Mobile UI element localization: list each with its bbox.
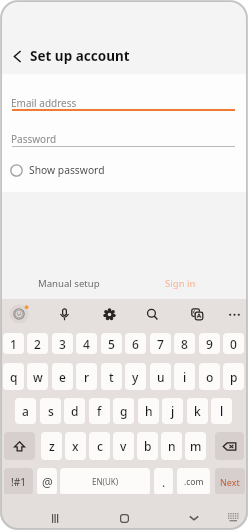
staticText: d (71, 403, 79, 419)
button[interactable]: d (64, 398, 85, 424)
staticText: 0 (230, 336, 237, 352)
button[interactable]: p (223, 363, 244, 390)
button[interactable]: Hide keyboard (183, 507, 205, 529)
staticText: 7 (157, 336, 164, 352)
button[interactable]: Voice input (53, 303, 75, 325)
button[interactable]: Backspace (215, 432, 244, 460)
button[interactable]: Translate (186, 303, 208, 325)
staticText: @ (42, 474, 53, 490)
button[interactable]: z (41, 432, 62, 460)
staticText: u (157, 369, 165, 385)
staticText: EN(UK) (92, 476, 119, 487)
button[interactable]: 9 (199, 333, 220, 354)
button[interactable]: . (154, 468, 173, 495)
staticText: j (171, 403, 175, 419)
staticText: a (22, 403, 29, 419)
staticText: c (97, 438, 103, 454)
button[interactable]: EN(UK) (60, 468, 150, 495)
staticText: f (97, 403, 102, 419)
staticText: p (230, 369, 238, 385)
button[interactable]: g (113, 398, 134, 424)
staticText: q (10, 369, 18, 385)
button[interactable]: i (174, 363, 195, 390)
button[interactable]: Keyboard settings (98, 303, 120, 325)
staticText: i (183, 369, 187, 385)
staticText: 4 (83, 336, 90, 352)
button[interactable]: o (199, 363, 220, 390)
button[interactable]: 8 (174, 333, 195, 354)
button[interactable]: m (185, 432, 206, 460)
button[interactable]: !#1 (4, 468, 33, 495)
staticText: 3 (59, 336, 66, 352)
button[interactable]: s (40, 398, 61, 424)
button[interactable]: x (65, 432, 86, 460)
button[interactable]: .com (177, 468, 210, 495)
button[interactable]: j (162, 398, 183, 424)
staticText: w (33, 369, 43, 385)
button[interactable]: More options (223, 303, 245, 325)
button[interactable]: Recents (43, 507, 65, 529)
staticText: l (220, 403, 224, 419)
button[interactable]: w (27, 363, 48, 390)
staticText: n (168, 438, 176, 454)
staticText: r (84, 369, 90, 385)
button[interactable]: n (161, 432, 182, 460)
button[interactable]: t (101, 363, 122, 390)
staticText: Email address (11, 96, 77, 110)
staticText: h (145, 403, 153, 419)
button[interactable]: Home (113, 507, 135, 529)
button[interactable]: u (150, 363, 171, 390)
staticText: t (109, 369, 114, 385)
button[interactable]: 4 (76, 333, 97, 354)
button[interactable]: a (15, 398, 36, 424)
staticText: Show password (29, 163, 105, 177)
staticText: . (162, 474, 166, 490)
button[interactable]: Sign in (165, 277, 196, 290)
staticText: !#1 (11, 475, 26, 489)
staticText: 5 (108, 336, 115, 352)
staticText: g (120, 403, 128, 419)
button[interactable]: 3 (52, 333, 73, 354)
button[interactable]: h (138, 398, 159, 424)
staticText: k (194, 403, 201, 419)
button[interactable]: 7 (150, 333, 171, 354)
button[interactable]: e (52, 363, 73, 390)
button[interactable]: Search (141, 303, 163, 325)
button[interactable]: 1 (3, 333, 24, 354)
button[interactable]: 6 (125, 333, 146, 354)
button[interactable]: k (187, 398, 208, 424)
button[interactable]: f (89, 398, 110, 424)
staticText: Set up account (30, 47, 130, 65)
button[interactable]: 0 (223, 333, 244, 354)
staticText: 9 (206, 336, 213, 352)
button[interactable]: Manual setup (38, 277, 100, 290)
button[interactable]: b (137, 432, 158, 460)
button[interactable]: Shift (4, 432, 35, 460)
staticText: b (144, 438, 152, 454)
staticText: v (120, 438, 127, 454)
button[interactable]: r (76, 363, 97, 390)
button[interactable]: l (211, 398, 232, 424)
button[interactable]: Keyboard (222, 507, 244, 529)
button[interactable]: 2 (27, 333, 48, 354)
staticText: s (48, 403, 54, 419)
staticText: 1 (10, 336, 17, 352)
staticText: Next (220, 476, 240, 488)
staticText: 2 (34, 336, 41, 352)
button[interactable]: v (113, 432, 134, 460)
button[interactable]: Back (3, 42, 31, 70)
button[interactable]: Emoji (8, 303, 30, 325)
staticText: Password (11, 132, 57, 146)
staticText: 6 (132, 336, 139, 352)
button[interactable]: Next (215, 468, 245, 495)
button[interactable]: 5 (101, 333, 122, 354)
button[interactable]: Show password (10, 159, 105, 181)
button[interactable]: y (125, 363, 146, 390)
staticText: e (59, 369, 66, 385)
button[interactable]: @ (37, 468, 57, 495)
button[interactable]: c (89, 432, 110, 460)
staticText: y (132, 369, 139, 385)
staticText: m (190, 438, 202, 454)
staticText: 8 (181, 336, 188, 352)
button[interactable]: q (3, 363, 24, 390)
